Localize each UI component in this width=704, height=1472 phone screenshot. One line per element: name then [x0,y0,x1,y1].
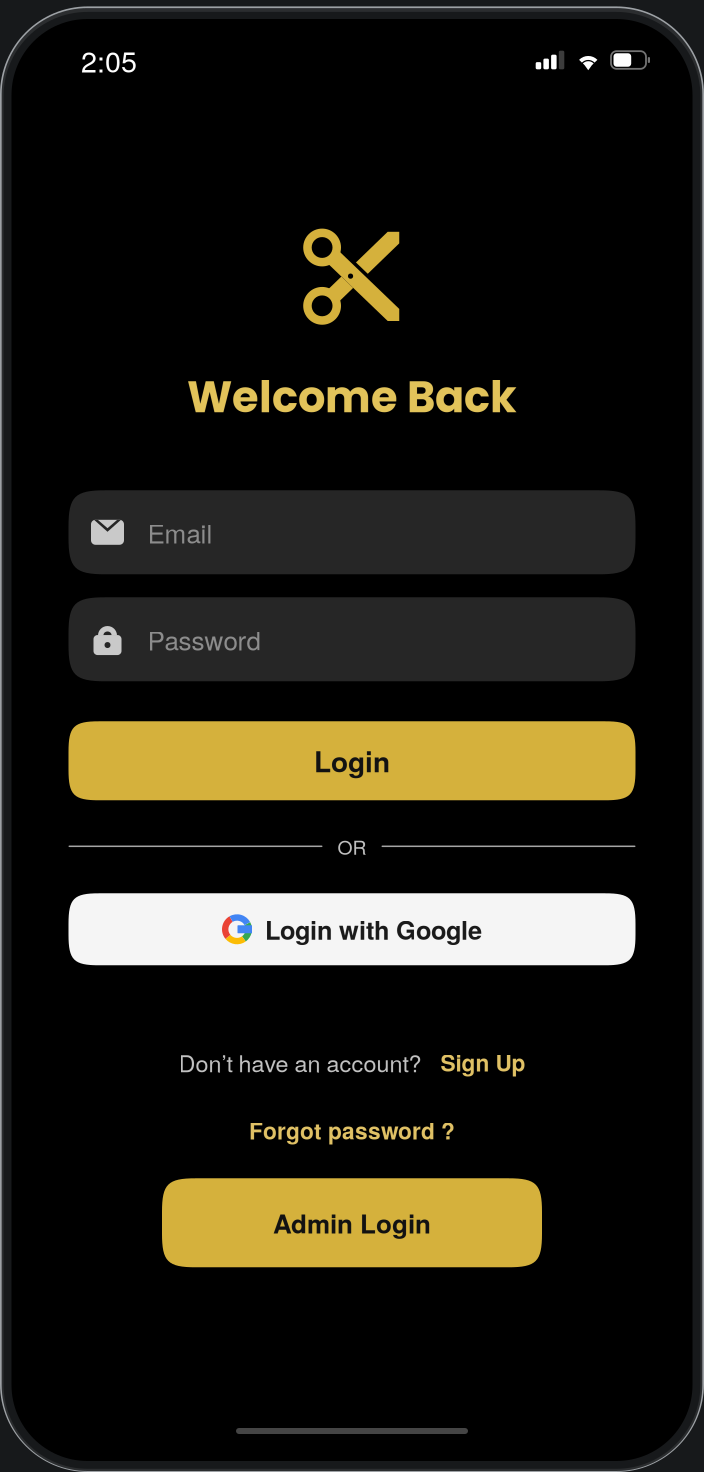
staticText: Forgot password ? [249,1114,455,1147]
staticText: 2:05 [81,39,137,81]
staticText: Password [147,621,260,658]
staticText: Sign Up [440,1046,525,1079]
button[interactable]: Sign Up [440,1046,525,1079]
staticText: Email [147,514,212,551]
staticText: Don’t have an account? [178,1046,421,1079]
staticText: Login with Google [265,911,482,947]
staticText: Welcome Back [187,367,517,427]
button[interactable]: Forgot password ? [249,1113,455,1147]
staticText: Admin Login [273,1204,431,1241]
staticText: OR [337,832,366,860]
staticText: Login [314,741,390,781]
button[interactable]: Login with Google [68,893,635,965]
button[interactable]: Login [68,721,635,800]
button[interactable]: Admin Login [162,1178,542,1267]
